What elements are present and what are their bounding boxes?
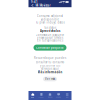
staticText: en tus aplicaciones	[37, 39, 63, 42]
button[interactable]: Factura	[37, 91, 46, 100]
staticText: Aprovéchalos	[40, 29, 60, 33]
staticText: Tu plan incluye datos	[35, 21, 64, 24]
staticText: Factura	[38, 96, 44, 98]
staticText: y gestionar tus	[40, 64, 60, 67]
button[interactable]: Más	[63, 91, 71, 100]
staticText: ya disponible	[40, 18, 59, 21]
button[interactable]: Ayuda	[54, 91, 63, 100]
button[interactable]: Tienda	[46, 91, 54, 100]
staticText: 9:41	[31, 0, 38, 4]
staticText: Inicio	[31, 96, 34, 98]
staticText: Recuerda que puedes	[34, 56, 66, 60]
staticText: Tus datos	[44, 26, 56, 29]
staticText: Mi Movistar	[35, 4, 50, 7]
staticText: Tienda	[47, 96, 52, 98]
button[interactable]: Inicio	[28, 91, 37, 100]
button[interactable]: Ver más	[43, 77, 57, 81]
staticText: Ver más	[45, 77, 55, 81]
staticText: Contratar paquete	[36, 46, 64, 49]
staticText: Ayuda	[56, 96, 61, 98]
staticText: Más	[66, 96, 69, 98]
staticText: consultar tu consumo	[35, 60, 64, 64]
staticText: Consumo adicional	[37, 14, 63, 18]
button[interactable]: Contratar paquete	[33, 45, 66, 51]
button[interactable]: Atrás	[31, 3, 34, 7]
staticText: servicios aquí	[41, 67, 59, 70]
staticText: Contrata un paquete	[35, 33, 64, 37]
staticText: y navega sin límites	[37, 36, 63, 39]
staticText: Más información	[37, 70, 62, 74]
